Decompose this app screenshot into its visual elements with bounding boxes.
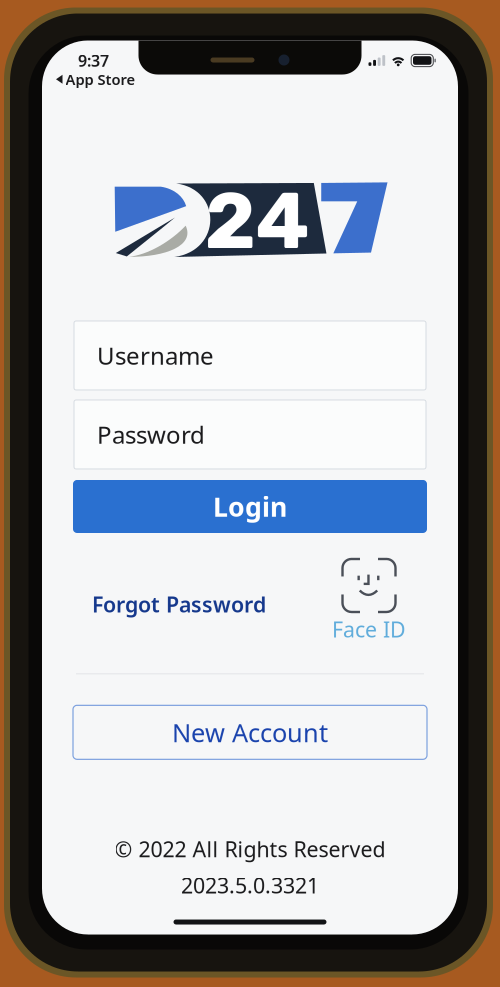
staticText: App Store — [65, 69, 135, 89]
button[interactable]: Login — [42, 480, 458, 533]
staticText: Password — [97, 418, 205, 450]
staticText: New Account — [172, 715, 328, 749]
staticText: Face ID — [332, 615, 406, 643]
button[interactable]: Username — [74, 321, 426, 390]
staticText: © 2022 All Rights Reserved — [114, 835, 385, 863]
button[interactable]: New Account — [42, 705, 458, 759]
button[interactable]: Password — [74, 400, 426, 469]
staticText: Login — [213, 489, 287, 524]
staticText: 2023.5.0.3321 — [181, 871, 319, 899]
button[interactable]: Face ID — [332, 559, 406, 643]
staticText: 9:37 — [78, 50, 109, 71]
staticText: 24 — [205, 175, 310, 268]
staticText: Forgot Password — [92, 590, 266, 618]
staticText: Username — [97, 339, 214, 371]
button[interactable]: Forgot Password — [92, 590, 266, 618]
